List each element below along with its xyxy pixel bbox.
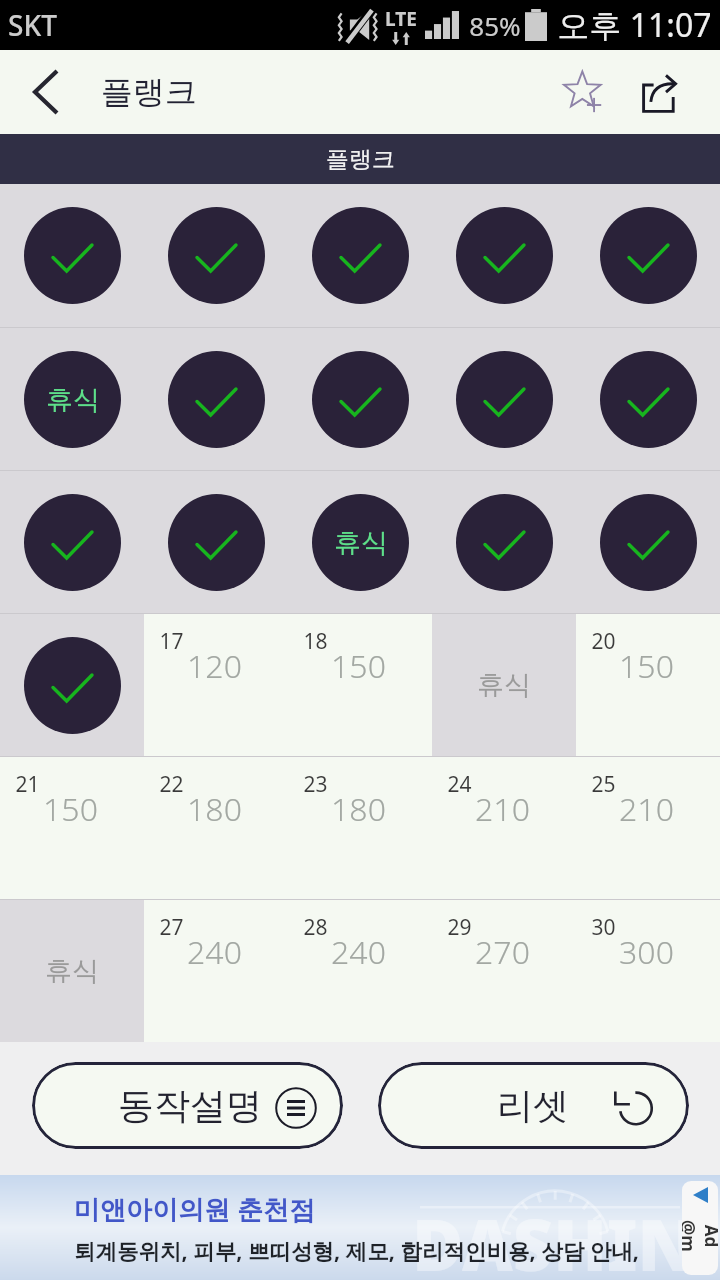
button[interactable]: 28	[288, 900, 432, 1042]
button[interactable]: Share	[636, 50, 720, 134]
button[interactable]: Day 15 completed	[576, 471, 720, 613]
button[interactable]: 27	[144, 900, 288, 1042]
button[interactable]: Day 16 completed	[0, 614, 144, 756]
staticText: 27	[159, 913, 184, 942]
button[interactable]: 22	[144, 757, 288, 899]
staticText: 150	[619, 644, 674, 688]
staticText: 270	[475, 930, 530, 974]
staticText: LTE	[385, 6, 417, 32]
staticText: 180	[187, 787, 242, 831]
button[interactable]: Day 2 completed	[144, 184, 288, 327]
staticText: 휴식	[334, 526, 388, 560]
button[interactable]: Day 6 completed	[0, 328, 144, 470]
staticText: 휴식	[45, 954, 99, 988]
button[interactable]: Day 10 completed	[576, 328, 720, 470]
staticText: 300	[619, 930, 674, 974]
button[interactable]: 휴식	[432, 614, 576, 756]
button[interactable]: Day 11 completed	[0, 471, 144, 613]
staticText: 20	[591, 627, 616, 656]
staticText: 180	[331, 787, 386, 831]
button[interactable]: DASHIN	[0, 1175, 720, 1280]
button[interactable]: 29	[432, 900, 576, 1042]
button[interactable]: 25	[576, 757, 720, 899]
button[interactable]: Day 1 completed	[0, 184, 144, 327]
staticText: 24	[447, 770, 472, 799]
staticText: 휴식	[46, 383, 100, 417]
button[interactable]: 23	[288, 757, 432, 899]
staticText: 미앤아이의원 춘천점	[74, 1191, 315, 1227]
staticText: 22	[159, 770, 184, 799]
staticText: 30	[591, 913, 616, 942]
staticText: 150	[43, 787, 98, 831]
staticText: Ad@m	[682, 1218, 718, 1254]
staticText: 150	[331, 644, 386, 688]
button[interactable]: Favorite	[552, 50, 636, 134]
button[interactable]: Day 7 completed	[144, 328, 288, 470]
staticText: 23	[303, 770, 328, 799]
staticText: DASHIN	[412, 1196, 696, 1280]
staticText: 21	[15, 770, 40, 799]
button[interactable]: Day 13 completed	[288, 471, 432, 613]
staticText: 플랭크	[101, 72, 197, 112]
staticText: 28	[303, 913, 328, 942]
button[interactable]: 30	[576, 900, 720, 1042]
button[interactable]: Day 14 completed	[432, 471, 576, 613]
button[interactable]: 21	[0, 757, 144, 899]
staticText: 240	[187, 930, 242, 974]
staticText: 휴식	[477, 668, 531, 702]
staticText: 240	[331, 930, 386, 974]
button[interactable]: 24	[432, 757, 576, 899]
button[interactable]: 휴식	[0, 900, 144, 1042]
staticText: 120	[187, 644, 242, 688]
staticText: SKT	[8, 6, 57, 44]
staticText: 17	[159, 627, 184, 656]
button[interactable]: Back	[0, 50, 84, 134]
button[interactable]: 동작설명	[32, 1062, 343, 1149]
staticText: 210	[475, 787, 530, 831]
button[interactable]: Day 9 completed	[432, 328, 576, 470]
staticText: 29	[447, 913, 472, 942]
staticText: 플랭크	[326, 145, 395, 174]
staticText: 18	[303, 627, 328, 656]
staticText: 리셋	[497, 1083, 569, 1128]
button[interactable]: Ad	[682, 1181, 718, 1275]
button[interactable]: Day 5 completed	[576, 184, 720, 327]
button[interactable]: 17	[144, 614, 288, 756]
staticText: 210	[619, 787, 674, 831]
button[interactable]: 20	[576, 614, 720, 756]
button[interactable]: Day 4 completed	[432, 184, 576, 327]
staticText: 동작설명	[118, 1083, 262, 1128]
staticText: 25	[591, 770, 616, 799]
staticText: 퇴계동위치, 피부, 쁘띠성형, 제모, 합리적인비용, 상담 안내,	[74, 1236, 639, 1265]
button[interactable]: Day 12 completed	[144, 471, 288, 613]
button[interactable]: Day 8 completed	[288, 328, 432, 470]
staticText: 오후 11:07	[557, 3, 712, 47]
button[interactable]: 리셋	[378, 1062, 689, 1149]
button[interactable]: Day 3 completed	[288, 184, 432, 327]
button[interactable]: 18	[288, 614, 432, 756]
staticText: 85%	[469, 8, 521, 43]
